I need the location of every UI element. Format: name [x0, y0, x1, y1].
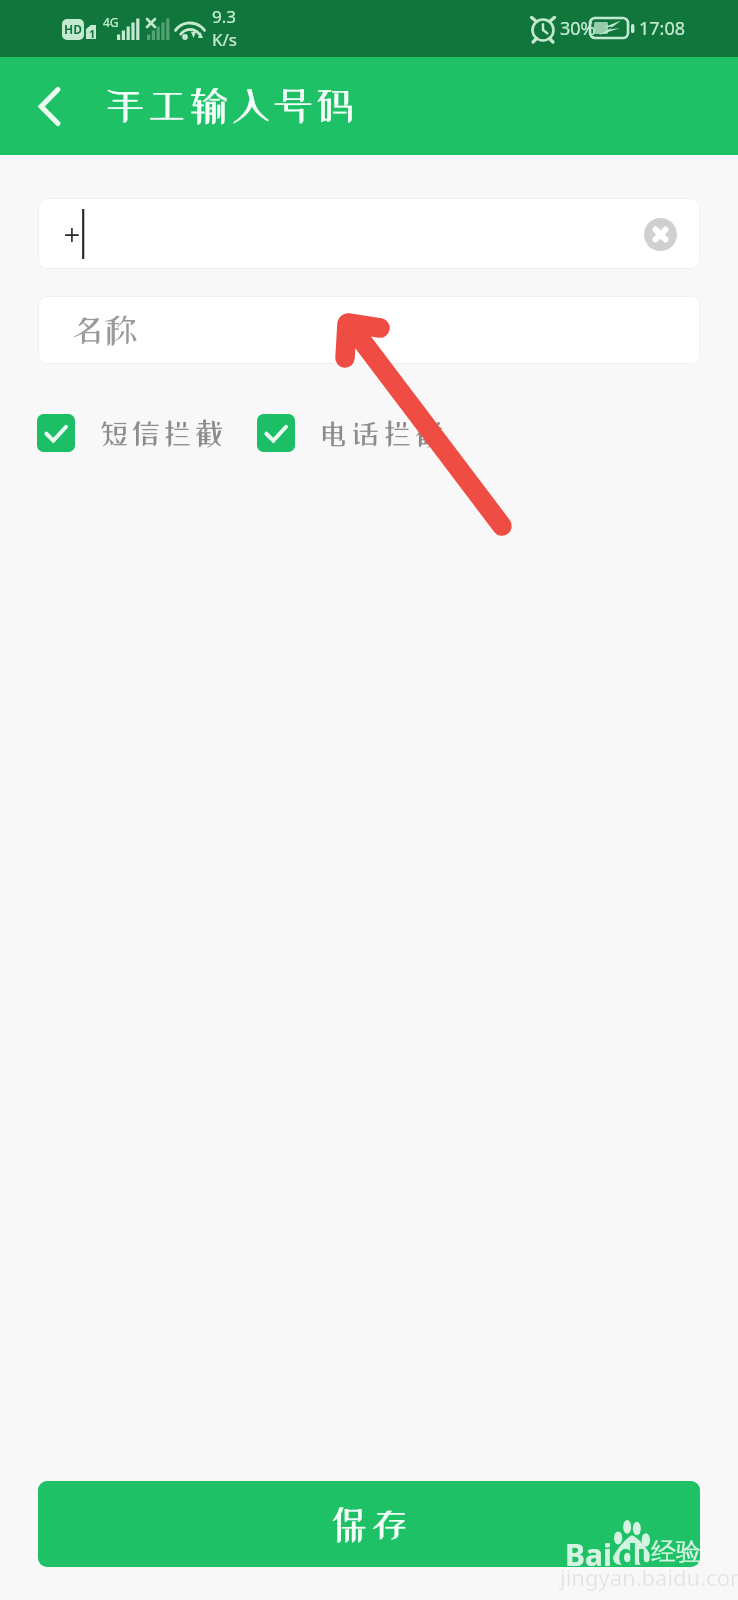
button[interactable]: +	[38, 198, 700, 269]
staticText: 电话拦截	[318, 418, 445, 449]
staticText: 名称	[69, 313, 139, 347]
staticText: 手工输入号码	[104, 85, 356, 126]
staticText: 经验	[651, 1536, 701, 1567]
staticText: Bai	[565, 1534, 612, 1575]
staticText: 4G	[103, 14, 119, 30]
button[interactable]: 保存	[38, 1481, 700, 1567]
button[interactable]: 名称	[38, 296, 700, 364]
staticText: 9.3	[212, 5, 237, 28]
staticText: 17:08	[639, 16, 686, 41]
button[interactable]: 短信拦截	[37, 414, 225, 452]
staticText: 30%	[560, 16, 596, 41]
staticText: 短信拦截	[98, 418, 225, 449]
button[interactable]: 电话拦截	[257, 414, 445, 452]
staticText: HD	[64, 21, 82, 37]
staticText: 保存	[329, 1505, 409, 1544]
button[interactable]: Back	[0, 57, 100, 155]
staticText: +	[64, 219, 80, 249]
staticText: K/s	[212, 28, 237, 51]
button[interactable]: Clear text	[638, 212, 682, 256]
staticText: du	[618, 1534, 657, 1575]
staticText: 1	[89, 26, 96, 41]
staticText: jingyan.baidu.com	[560, 1562, 738, 1592]
